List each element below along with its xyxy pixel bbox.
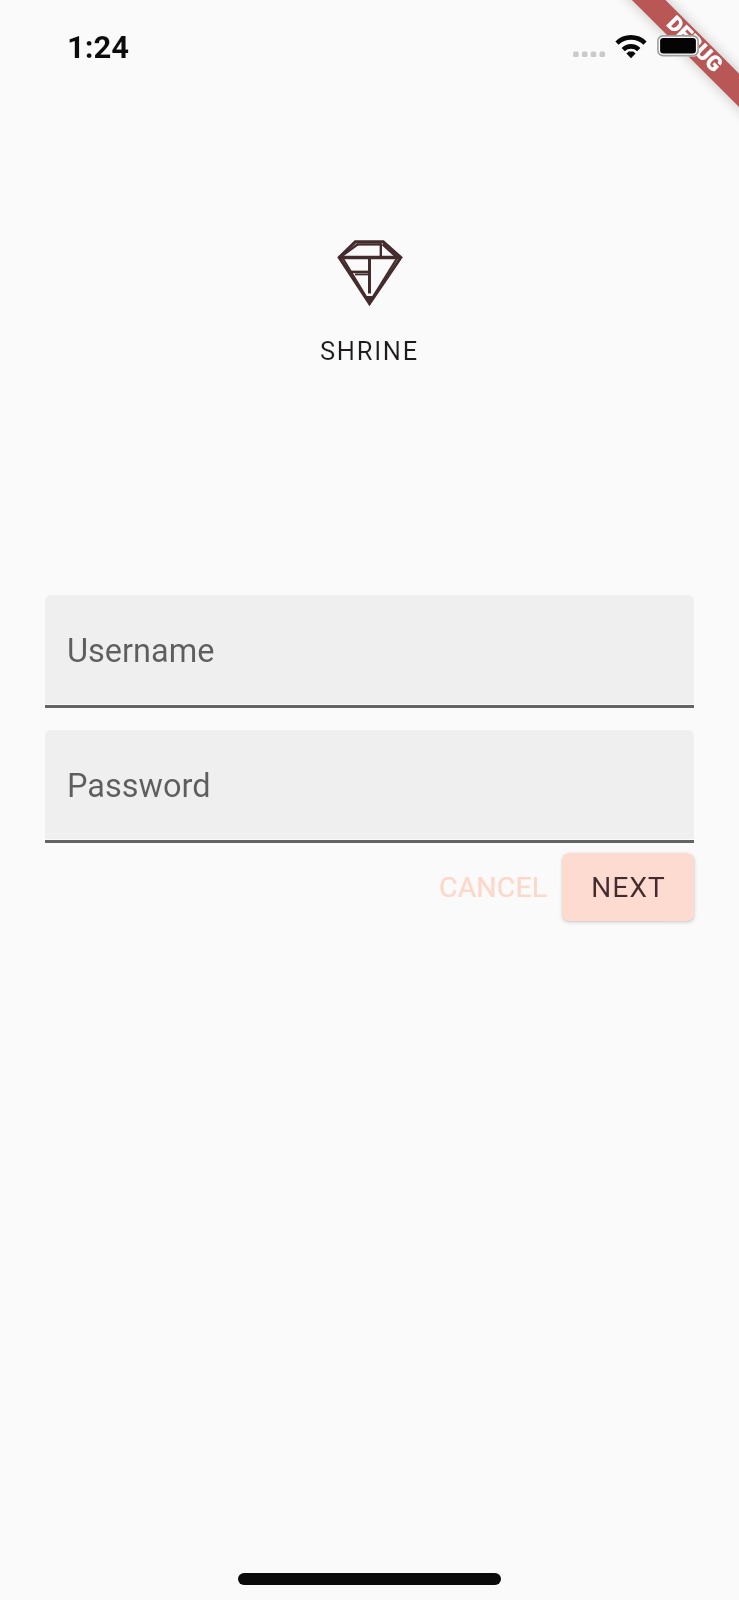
button[interactable]: Username — [45, 595, 694, 704]
staticText: SHRINE — [320, 336, 419, 366]
other: Wi-Fi — [615, 34, 647, 58]
button[interactable]: CANCEL — [413, 853, 562, 921]
button[interactable]: NEXT — [562, 853, 694, 921]
staticText: CANCEL — [439, 871, 548, 904]
button[interactable]: Password — [45, 730, 694, 839]
staticText: Password — [67, 767, 211, 805]
other: Battery — [657, 35, 699, 57]
staticText: DEBUG — [661, 11, 728, 78]
staticText: NEXT — [591, 871, 666, 904]
staticText: 1:24 — [67, 29, 130, 65]
staticText: Username — [67, 632, 215, 670]
